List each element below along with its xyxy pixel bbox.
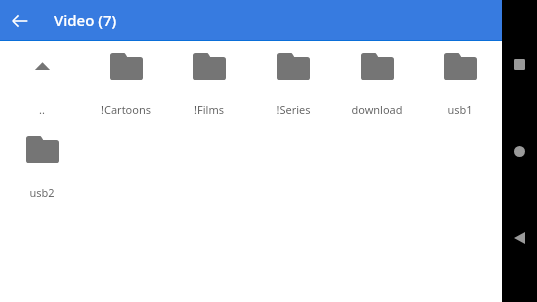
button[interactable]: Home	[502, 135, 537, 167]
staticText: usb1	[447, 102, 473, 117]
button[interactable]: ..	[0, 41, 84, 124]
staticText: !Films	[194, 102, 224, 117]
button[interactable]: !Cartoons	[84, 41, 168, 124]
button[interactable]: Back	[502, 222, 537, 254]
button[interactable]: !Series	[251, 41, 335, 124]
staticText: ..	[39, 102, 45, 117]
button[interactable]: usb1	[418, 41, 502, 124]
button[interactable]: !Films	[167, 41, 251, 124]
staticText: usb2	[29, 185, 55, 200]
staticText: Video (7)	[54, 10, 117, 30]
button[interactable]: download	[335, 41, 419, 124]
staticText: !Series	[276, 102, 311, 117]
button[interactable]: Navigate up	[0, 1, 40, 41]
button[interactable]: usb2	[0, 124, 84, 207]
staticText: !Cartoons	[101, 102, 151, 117]
staticText: download	[351, 102, 403, 117]
button[interactable]: Recent apps	[502, 48, 537, 80]
